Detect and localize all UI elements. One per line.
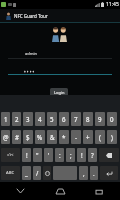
button[interactable]: : <box>55 148 64 162</box>
staticText: 9 <box>98 115 102 123</box>
button[interactable]: Recents <box>80 182 120 200</box>
button[interactable]: Back <box>0 182 40 200</box>
button[interactable]: / <box>33 166 41 180</box>
staticText: =\< <box>7 152 14 158</box>
button[interactable]: ABC <box>1 166 20 180</box>
button[interactable]: ! <box>22 148 31 162</box>
button[interactable]: - <box>71 130 81 144</box>
staticText: 6 <box>62 115 66 123</box>
button[interactable]: 4 <box>35 112 45 126</box>
staticText: ' <box>48 151 50 159</box>
button[interactable]: # <box>12 130 21 144</box>
button[interactable]: * <box>59 130 69 144</box>
staticText: ( <box>99 133 101 141</box>
staticText: # <box>15 133 19 141</box>
staticText: NFC Guard Tour <box>14 13 48 19</box>
button[interactable]: 5 <box>47 112 57 126</box>
button[interactable]: 9 <box>95 112 105 126</box>
staticText: 2 <box>15 115 19 123</box>
staticText: 7 <box>74 115 78 123</box>
button[interactable]: 8 <box>83 112 93 126</box>
staticText: • • • • <box>24 69 35 75</box>
button[interactable] <box>43 166 51 180</box>
staticText: / <box>36 169 39 177</box>
button[interactable]: ( <box>95 130 105 144</box>
staticText: _ <box>25 169 28 177</box>
staticText: & <box>50 133 55 141</box>
button[interactable]: ; <box>66 148 75 162</box>
button[interactable]: ) <box>107 130 117 144</box>
staticText: ; <box>70 151 72 159</box>
button[interactable]: Home <box>40 182 80 200</box>
button[interactable]: 3 <box>23 112 33 126</box>
staticText: ! <box>26 151 28 159</box>
staticText: Login <box>54 90 65 95</box>
button[interactable]: @ <box>1 130 10 144</box>
button[interactable]: 6 <box>59 112 69 126</box>
staticText: * <box>62 133 66 141</box>
staticText: 8 <box>86 115 90 123</box>
staticText: 5 <box>50 115 54 123</box>
button[interactable]: ! <box>77 148 86 162</box>
button[interactable]: + <box>83 130 93 144</box>
staticText: : <box>59 151 61 159</box>
staticText: 3 <box>26 115 30 123</box>
button[interactable]: $ <box>23 130 33 144</box>
staticText: ? <box>91 151 94 159</box>
button[interactable]: " <box>33 148 42 162</box>
button[interactable]: . <box>90 166 98 180</box>
staticText: . <box>93 169 95 177</box>
staticText: 1 <box>4 115 8 123</box>
staticText: ! <box>81 151 83 159</box>
button[interactable]: =\< <box>1 148 20 162</box>
button[interactable]: % <box>35 130 45 144</box>
staticText: @ <box>3 133 9 141</box>
button[interactable]: ? <box>88 148 97 162</box>
staticText: admin <box>25 51 37 56</box>
button[interactable]: ' <box>44 148 53 162</box>
button[interactable]: 7 <box>71 112 81 126</box>
staticText: " <box>36 151 39 159</box>
button[interactable]: , <box>79 166 88 180</box>
button[interactable] <box>100 166 118 180</box>
button[interactable]: Login <box>50 88 68 96</box>
button[interactable]: 0 <box>107 112 117 126</box>
staticText: , <box>83 169 85 177</box>
staticText: % <box>37 133 43 141</box>
staticText: ) <box>111 133 113 141</box>
button[interactable] <box>99 148 119 162</box>
button[interactable]: 2 <box>12 112 21 126</box>
staticText: - <box>75 133 77 141</box>
staticText: 11:45 <box>106 1 119 8</box>
button[interactable]: & <box>47 130 57 144</box>
staticText: 0 <box>110 115 114 123</box>
staticText: $ <box>26 133 30 141</box>
button[interactable]: _ <box>22 166 31 180</box>
staticText: + <box>86 133 90 141</box>
button[interactable]: 1 <box>1 112 10 126</box>
staticText: 4 <box>38 115 42 123</box>
staticText: ABC <box>6 170 15 176</box>
